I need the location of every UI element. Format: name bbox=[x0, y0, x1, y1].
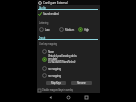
staticText: High bbox=[84, 28, 89, 32]
button[interactable]: App icon bbox=[38, 1, 42, 5]
staticText: emulate bbox=[48, 57, 58, 61]
button[interactable]: None bbox=[42, 49, 54, 54]
staticText: Lettering bbox=[39, 21, 49, 25]
button[interactable]: Home bbox=[64, 93, 73, 102]
staticText: no mapping bbox=[48, 67, 61, 71]
button[interactable]: Sound enabled bbox=[38, 12, 59, 16]
button[interactable]: Map Keys bbox=[46, 81, 66, 85]
staticText: Audio bbox=[39, 6, 46, 10]
button[interactable]: no mapping bbox=[42, 73, 61, 78]
button[interactable]: no mapping bbox=[42, 66, 61, 71]
button[interactable]: Disable mapped keys in overlay bbox=[38, 88, 73, 92]
button[interactable]: Back bbox=[46, 93, 55, 102]
button[interactable]: High bbox=[78, 27, 89, 32]
button[interactable]: Low bbox=[39, 27, 50, 32]
button[interactable]: Recents bbox=[82, 93, 91, 102]
staticText: D-PAD/ABXY/Start/Select) bbox=[48, 60, 76, 64]
button[interactable] bbox=[37, 0, 100, 5]
staticText: Sound enabled bbox=[43, 12, 59, 16]
staticText: Input bbox=[39, 36, 46, 40]
button[interactable]: Medium bbox=[59, 27, 74, 32]
staticText: Virtual d-pad (analog sticks bbox=[48, 54, 77, 58]
button[interactable]: Rename bbox=[71, 81, 92, 85]
staticText: Medium bbox=[65, 28, 74, 32]
staticText: no mapping bbox=[48, 74, 61, 78]
staticText: Low bbox=[45, 28, 50, 32]
staticText: Map Keys bbox=[51, 81, 61, 85]
staticText: Use key mapping bbox=[39, 42, 58, 46]
button[interactable] bbox=[42, 54, 97, 64]
staticText: None bbox=[48, 50, 54, 54]
staticText: Rename bbox=[77, 81, 86, 85]
staticText: Configure External bbox=[43, 1, 68, 5]
staticText: Disable mapped keys in overlay bbox=[42, 88, 73, 92]
